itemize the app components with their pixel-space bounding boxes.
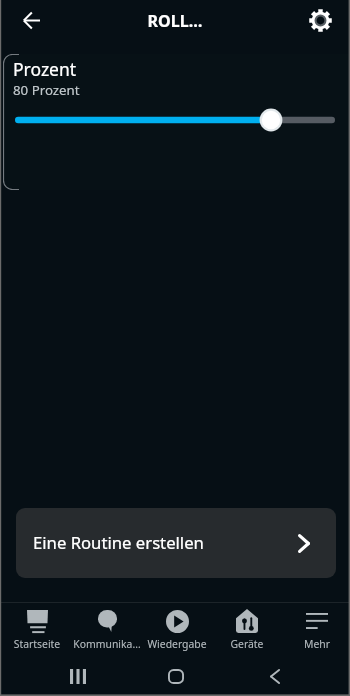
staticText: ROLL… [147,10,203,32]
button[interactable]: Settings [300,0,341,41]
button[interactable]: Mehr [282,603,350,653]
staticText: Eine Routine erstellen [33,531,204,554]
staticText: Startseite [2,637,72,651]
button[interactable]: Back [11,0,52,41]
button[interactable]: Kommunika… [72,603,142,653]
button[interactable]: Back [251,655,299,696]
button[interactable]: Wiedergabe [142,603,212,653]
staticText: Kommunika… [72,637,142,651]
staticText: Prozent [13,57,77,81]
staticText: 80 Prozent [13,81,80,99]
button[interactable]: Home [152,655,200,696]
button[interactable]: Recents [54,655,102,696]
button[interactable]: Geräte [212,603,282,653]
button[interactable]: Eine Routine erstellen [16,508,336,578]
staticText: Geräte [212,637,282,651]
staticText: Mehr [282,637,350,651]
staticText: Wiedergabe [142,637,212,651]
button[interactable]: Startseite [2,603,72,653]
